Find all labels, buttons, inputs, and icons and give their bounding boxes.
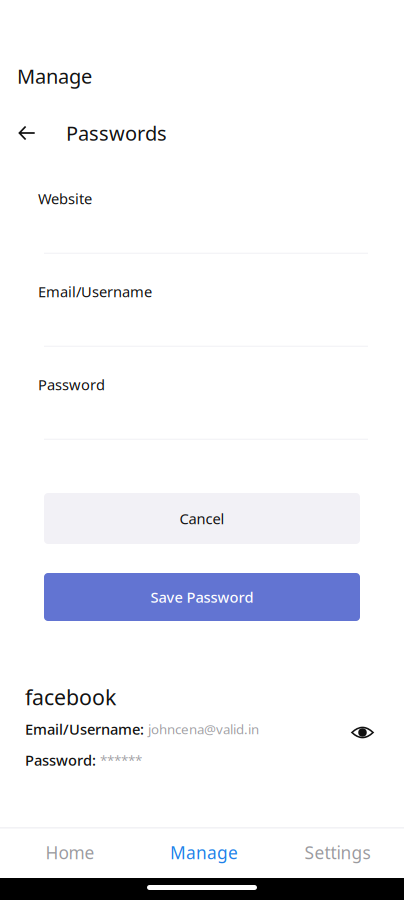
staticText: Home — [45, 841, 94, 864]
button[interactable]: Home — [3, 827, 137, 878]
button[interactable]: Show password — [350, 718, 375, 740]
button[interactable]: Cancel — [44, 493, 360, 544]
staticText: Manage — [17, 63, 92, 89]
button[interactable]: Save Password — [44, 573, 360, 621]
staticText: Manage — [170, 841, 238, 864]
staticText: Email/Username — [38, 282, 152, 301]
button[interactable]: Back — [7, 120, 47, 146]
staticText: Password — [38, 375, 105, 394]
staticText: Passwords — [66, 120, 167, 146]
staticText: Settings — [304, 841, 370, 864]
staticText: Save Password — [150, 587, 253, 607]
staticText: Website — [38, 189, 92, 208]
staticText: Cancel — [179, 509, 224, 528]
staticText: johncena@valid.in — [148, 720, 259, 738]
staticText: ****** — [100, 751, 142, 769]
button[interactable]: Settings — [271, 827, 404, 878]
button[interactable]: Manage — [137, 827, 271, 878]
staticText: Password: — [25, 750, 100, 770]
staticText: facebook — [25, 683, 116, 711]
staticText: Email/Username: — [25, 719, 148, 739]
